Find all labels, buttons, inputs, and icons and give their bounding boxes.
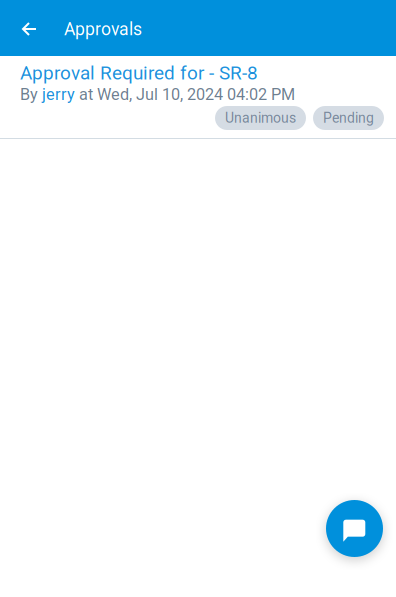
button[interactable]: Back <box>7 7 51 51</box>
staticText: Unanimous <box>225 110 296 126</box>
button[interactable]: Approval Required for - SR-8 <box>0 56 396 139</box>
button[interactable]: Unanimous <box>215 106 306 130</box>
staticText: at Wed, Jul 10, 2024 04:02 PM <box>75 85 295 104</box>
staticText: jerry <box>42 85 75 104</box>
staticText: Approval Required for - SR-8 <box>20 62 258 84</box>
staticText: Approvals <box>64 19 142 40</box>
button[interactable]: Pending <box>313 106 384 130</box>
staticText: Pending <box>323 110 374 126</box>
staticText: By <box>20 85 42 104</box>
button[interactable]: New message <box>326 500 383 557</box>
